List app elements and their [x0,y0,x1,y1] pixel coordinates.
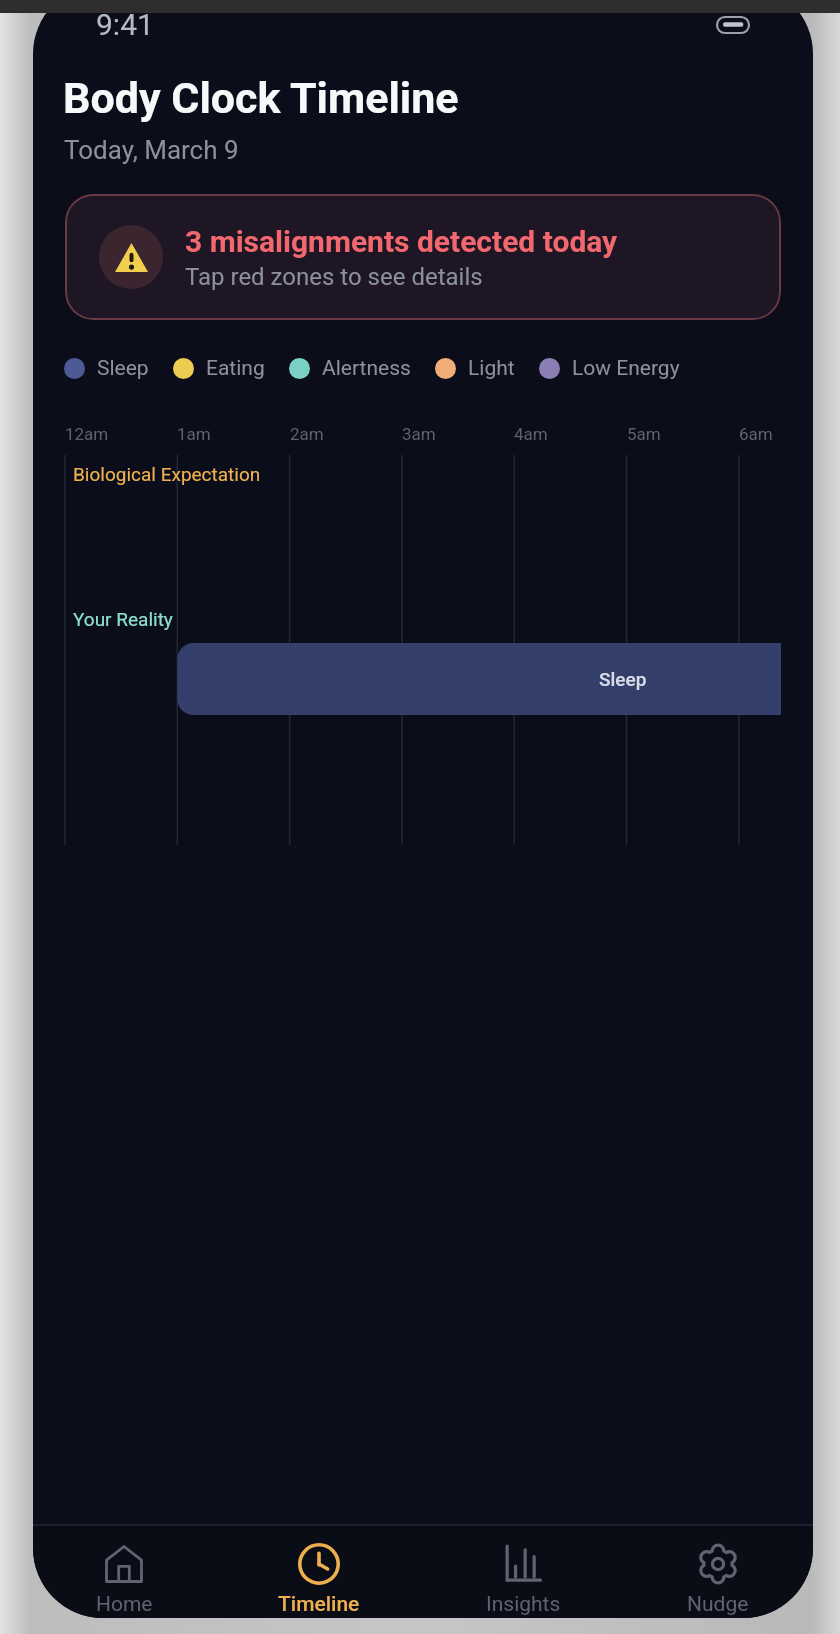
other: Timeline [298,1543,340,1585]
button[interactable]: Timeline [222,1526,416,1618]
staticText: Biological Expectation [73,463,261,485]
other: Insights [505,1546,541,1582]
button[interactable]: Low Energy [539,356,680,381]
button[interactable]: Light [435,356,515,381]
staticText: Eating [206,356,265,381]
staticText: 12am [65,424,109,444]
button[interactable]: Eating [173,356,265,381]
button[interactable] [65,643,781,715]
staticText: Today, March 9 [64,135,239,165]
staticText: Insights [486,1592,561,1617]
button[interactable]: Sleep [64,356,149,381]
staticText: Sleep [599,668,647,690]
button[interactable]: Nudge [621,1526,813,1618]
button[interactable]: Insights [426,1526,620,1618]
staticText: Low Energy [572,356,680,381]
staticText: Home [96,1592,153,1617]
staticText: 9:41 [96,7,154,42]
staticText: Alertness [322,356,411,381]
other: Battery [717,17,749,33]
staticText: Your Reality [73,608,173,630]
button[interactable]: 3 misalignments detected today [65,194,781,320]
staticText: Sleep [97,356,149,381]
staticText: Tap red zones to see details [185,263,483,291]
staticText: 4am [514,424,548,444]
staticText: 6am [739,424,773,444]
staticText: Nudge [687,1592,749,1617]
staticText: 5am [627,424,661,444]
button[interactable]: Home [33,1526,221,1618]
other: Nudge [699,1545,737,1583]
staticText: 3am [402,424,436,444]
button[interactable]: Alertness [289,356,411,381]
staticText: 1am [177,424,211,444]
staticText: Body Clock Timeline [63,73,459,123]
other: Home [105,1545,143,1583]
staticText: Light [468,356,515,381]
staticText: Timeline [278,1592,360,1617]
staticText: 2am [290,424,324,444]
staticText: 3 misalignments detected today [185,224,618,259]
